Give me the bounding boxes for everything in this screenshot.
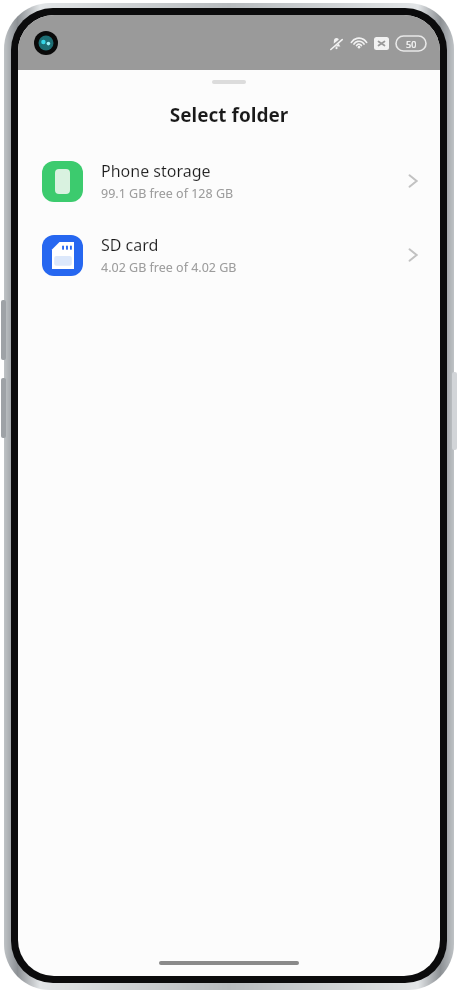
staticText: 50: [406, 38, 417, 50]
button[interactable]: Phone storage: [18, 156, 440, 206]
staticText: Phone storage: [101, 160, 211, 182]
staticText: SD card: [101, 234, 159, 256]
staticText: 99.1 GB free of 128 GB: [101, 185, 234, 202]
staticText: 4.02 GB free of 4.02 GB: [101, 259, 237, 276]
button[interactable]: SD card: [18, 230, 440, 280]
staticText: Select folder: [18, 102, 440, 128]
